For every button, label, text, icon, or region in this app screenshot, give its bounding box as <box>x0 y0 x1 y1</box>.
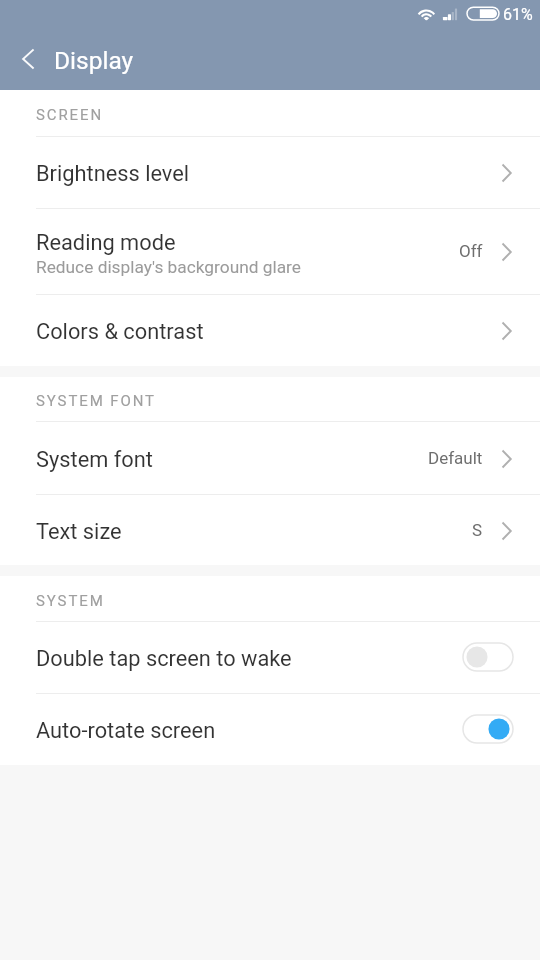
button[interactable]: Text size <box>0 494 540 565</box>
button[interactable]: Auto-rotate screen <box>0 693 540 765</box>
staticText: System font <box>36 447 153 473</box>
staticText: Text size <box>36 519 122 545</box>
button[interactable]: Colors & contrast <box>0 294 540 366</box>
staticText: S <box>472 520 483 540</box>
button[interactable]: Brightness level <box>0 136 540 208</box>
staticText: Reading mode <box>36 230 176 256</box>
staticText: 61% <box>503 5 533 24</box>
staticText: Default <box>428 448 483 468</box>
staticText: Off <box>459 241 483 261</box>
staticText: SYSTEM <box>36 592 105 610</box>
staticText: SCREEN <box>36 106 104 124</box>
staticText: Colors & contrast <box>36 319 204 345</box>
staticText: Display <box>54 46 134 75</box>
staticText: Auto-rotate screen <box>36 718 463 744</box>
staticText: Brightness level <box>36 161 190 187</box>
button[interactable]: Reading mode <box>0 208 540 294</box>
staticText: Reduce display's background glare <box>36 257 301 277</box>
button[interactable]: System font <box>0 421 540 494</box>
staticText: SYSTEM FONT <box>36 392 156 410</box>
button[interactable]: Back <box>6 31 50 87</box>
staticText: Double tap screen to wake <box>36 646 463 672</box>
button[interactable]: Double tap screen to wake <box>0 621 540 693</box>
